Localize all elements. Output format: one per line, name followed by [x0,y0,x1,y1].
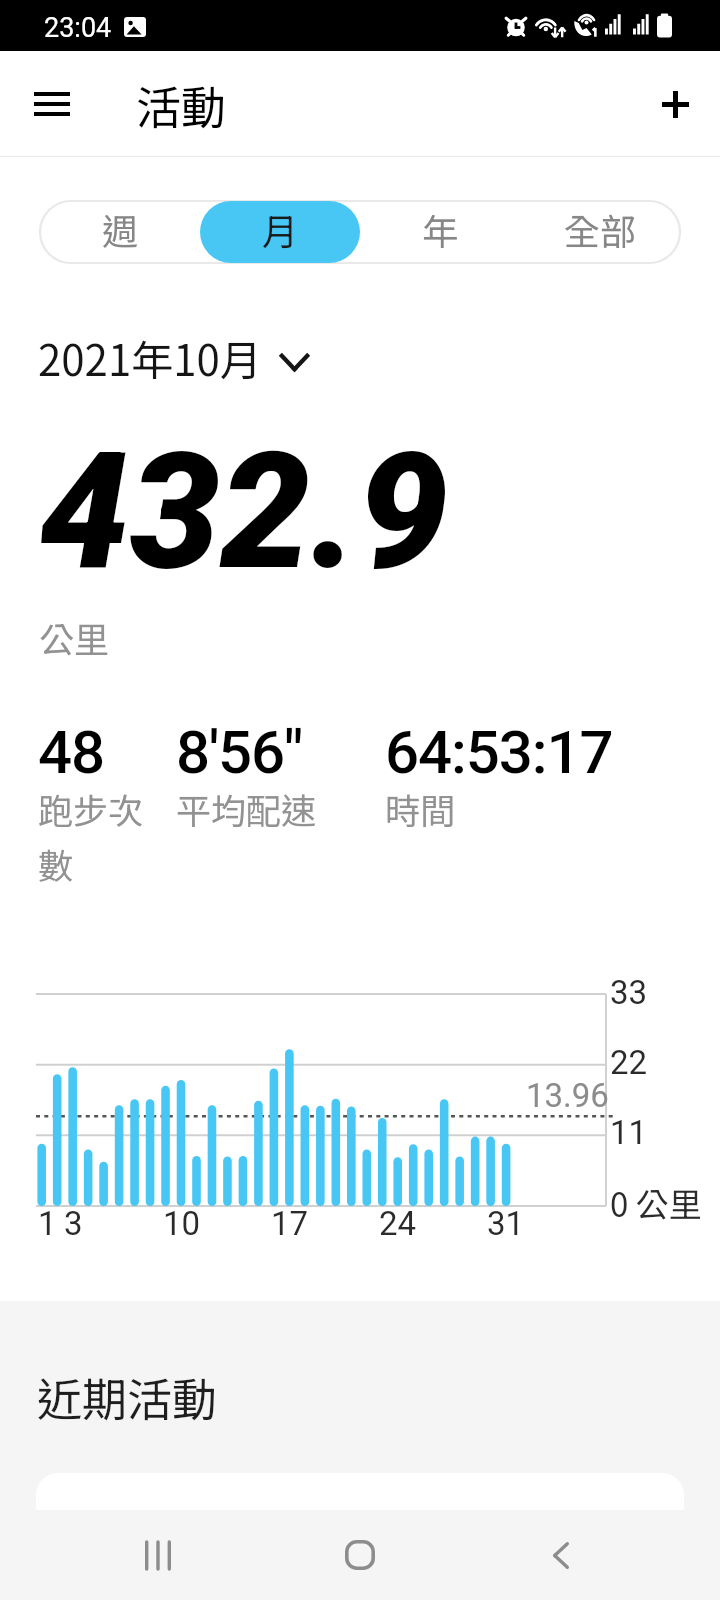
staticText: 平均配速 [176,783,317,834]
button[interactable]: 週 [40,201,200,263]
staticText: 23:04 [44,12,112,44]
staticText: 跑步次數 [38,783,172,889]
staticText: 活動 [136,72,227,137]
button[interactable]: 年 [360,201,520,263]
staticText: 0 公里 [610,1179,702,1227]
staticText: 31 [487,1204,525,1243]
staticText: 週 [102,203,139,255]
staticText: 月 [262,203,299,255]
staticText: 24 [379,1204,417,1243]
button[interactable]: Recent apps [118,1515,198,1595]
button[interactable]: Home [320,1515,400,1595]
staticText: 48 [38,717,105,787]
staticText: 3 [64,1204,83,1243]
staticText: 公里 [39,612,110,663]
staticText: 全部 [564,203,637,255]
staticText: 10 [163,1204,201,1243]
staticText: 64:53:17 [385,717,613,787]
staticText: 年 [422,203,459,255]
staticText: 22 [610,1043,648,1082]
staticText: 2021年10月 [38,327,262,383]
staticText: 8'56" [176,717,303,787]
staticText: 11 [610,1113,648,1152]
button[interactable]: Add [639,68,711,140]
staticText: 13.96 [526,1076,609,1115]
staticText: 時間 [385,783,456,834]
staticText: 1 [38,1204,57,1243]
staticText: 432.9 [39,418,449,607]
button[interactable]: 2021年10月 [38,327,309,383]
staticText: 近期活動 [37,1364,218,1429]
button[interactable]: Back [521,1515,601,1595]
staticText: 33 [610,973,648,1012]
button[interactable]: 月 [200,201,360,263]
button[interactable]: 全部 [520,201,680,263]
button[interactable]: Menu [16,68,88,140]
staticText: 17 [271,1204,309,1243]
